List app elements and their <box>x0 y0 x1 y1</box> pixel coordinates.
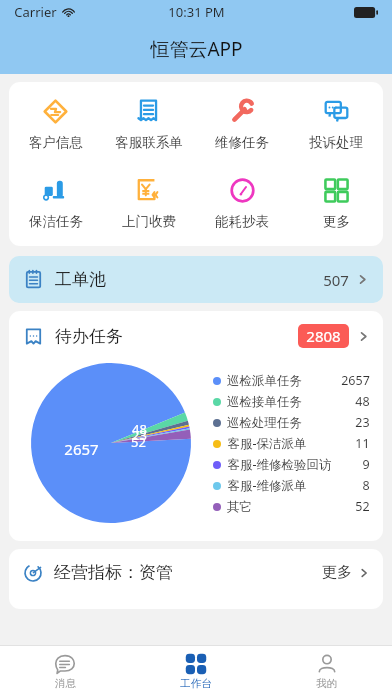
staticText: 经营指标：资管 <box>54 562 173 583</box>
staticText: 客户信息 <box>29 134 83 151</box>
button[interactable]: 客服联系单 <box>102 96 195 153</box>
staticText: 客服联系单 <box>115 134 183 151</box>
staticText: 更多 <box>323 213 350 230</box>
button[interactable]: 上门收费 <box>102 175 195 232</box>
staticText: 客服-保洁派单 <box>227 435 307 452</box>
staticText: 能耗抄表 <box>215 213 269 230</box>
button[interactable]: 维修任务 <box>195 96 289 153</box>
staticText: 48 <box>355 393 370 410</box>
button[interactable]: 我的 <box>261 646 392 696</box>
staticText: 10:31 PM <box>168 3 225 21</box>
staticText: 消息 <box>55 677 76 690</box>
staticText: 待办任务 <box>55 326 123 347</box>
staticText: 巡检接单任务 <box>227 394 302 410</box>
button[interactable]: 投诉处理 <box>289 96 383 153</box>
staticText: 52 <box>355 498 370 515</box>
staticText: 23 <box>355 414 370 431</box>
button[interactable]: 消息 <box>0 646 130 696</box>
button[interactable]: 待办任务 <box>9 311 383 357</box>
staticText: 507 <box>323 270 349 290</box>
button[interactable]: 客户信息 <box>9 96 102 153</box>
button[interactable]: 工作台 <box>130 646 261 696</box>
staticText: 维修任务 <box>215 134 269 151</box>
staticText: 工作台 <box>180 677 212 690</box>
button[interactable]: 经营指标：资管 <box>9 549 383 583</box>
staticText: 上门收费 <box>122 213 176 230</box>
button[interactable]: 保洁任务 <box>9 175 102 232</box>
staticText: 更多 <box>322 563 352 582</box>
staticText: 恒管云APP <box>150 36 243 62</box>
staticText: 客服-维修检验回访 <box>227 456 332 473</box>
staticText: 2808 <box>306 326 341 346</box>
staticText: 48 <box>132 420 147 438</box>
staticText: 23 <box>132 426 147 444</box>
staticText: 客服-维修派单 <box>227 477 307 494</box>
button[interactable]: 能耗抄表 <box>195 175 289 232</box>
staticText: 其它 <box>227 499 252 515</box>
staticText: 巡检处理任务 <box>227 415 302 431</box>
staticText: 9 <box>362 456 370 473</box>
staticText: 巡检派单任务 <box>227 373 302 389</box>
staticText: 工单池 <box>55 269 106 290</box>
staticText: 8 <box>362 477 370 494</box>
staticText: Carrier <box>14 3 57 21</box>
staticText: 2657 <box>64 439 99 459</box>
button[interactable]: 工单池 <box>9 256 383 303</box>
staticText: 我的 <box>316 677 337 690</box>
staticText: 52 <box>131 433 146 451</box>
staticText: 11 <box>355 435 370 452</box>
button[interactable]: 更多 <box>289 175 383 232</box>
staticText: 保洁任务 <box>29 213 83 230</box>
staticText: 投诉处理 <box>309 134 363 151</box>
staticText: 2657 <box>341 372 370 389</box>
